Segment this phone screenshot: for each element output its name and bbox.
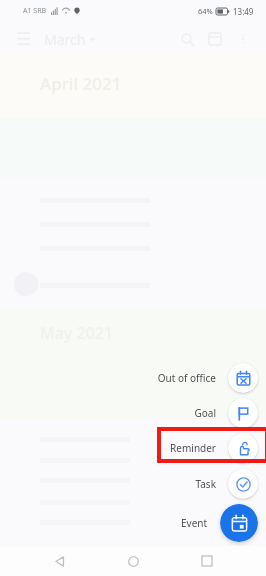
staticText: 13:49 <box>233 6 254 17</box>
staticText: April 2021 <box>40 72 122 95</box>
staticText: Event <box>181 516 208 530</box>
staticText: Goal <box>194 406 216 420</box>
staticText: Reminder <box>170 441 216 455</box>
button[interactable]: Event <box>0 502 258 544</box>
staticText: A1 SRB <box>23 6 47 16</box>
button[interactable]: Reminder <box>0 431 258 465</box>
staticText: 64% <box>198 6 213 16</box>
button[interactable]: Out of office <box>0 361 258 395</box>
button[interactable]: Recents <box>192 546 222 576</box>
button[interactable]: Home <box>118 546 148 576</box>
button[interactable]: March <box>44 30 96 49</box>
button[interactable]: Back <box>44 546 74 576</box>
button[interactable]: Calendar view <box>202 26 228 52</box>
staticText: Task <box>195 477 216 491</box>
button[interactable]: Goal <box>0 396 258 430</box>
button[interactable]: Menu <box>10 26 36 52</box>
staticText: March <box>44 30 86 49</box>
staticText: Out of office <box>157 371 216 385</box>
button[interactable]: Task <box>0 467 258 501</box>
